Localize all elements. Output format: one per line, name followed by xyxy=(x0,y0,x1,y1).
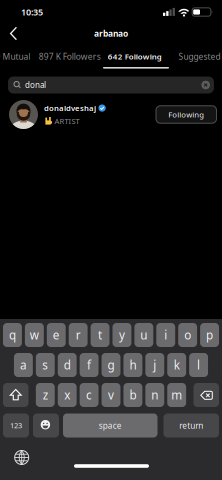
button[interactable]: Back xyxy=(1,22,23,45)
staticText: 897 K Followers xyxy=(39,51,101,62)
staticText: n xyxy=(151,387,158,403)
button[interactable]: x xyxy=(58,383,77,407)
button[interactable]: y xyxy=(112,323,131,347)
button[interactable]: n xyxy=(145,383,164,407)
staticText: a xyxy=(20,357,27,373)
staticText: e xyxy=(53,327,60,343)
button[interactable]: s xyxy=(36,353,55,377)
button[interactable]: m xyxy=(167,383,186,407)
staticText: k xyxy=(174,357,180,373)
staticText: donaldveshaj xyxy=(44,103,96,113)
button[interactable]: q xyxy=(3,323,22,347)
staticText: v xyxy=(108,387,114,403)
staticText: o xyxy=(184,327,191,343)
staticText: 10:35 xyxy=(21,6,43,18)
button[interactable]: 123 xyxy=(3,413,29,437)
staticText: h xyxy=(129,357,136,373)
button[interactable]: d xyxy=(58,353,77,377)
button[interactable]: Following xyxy=(156,106,216,123)
button[interactable]: w xyxy=(25,323,44,347)
button[interactable]: p xyxy=(200,323,219,347)
staticText: u xyxy=(140,327,147,343)
staticText: c xyxy=(86,387,92,403)
button[interactable]: o xyxy=(178,323,197,347)
button[interactable]: Shift xyxy=(3,383,28,407)
button[interactable]: return xyxy=(163,413,219,437)
button[interactable]: k xyxy=(167,353,186,377)
button[interactable]: Delete xyxy=(193,383,219,407)
staticText: return xyxy=(179,420,203,431)
button[interactable]: Search xyxy=(8,76,214,93)
staticText: z xyxy=(43,387,48,403)
staticText: Following xyxy=(168,109,204,120)
button[interactable]: z xyxy=(36,383,55,407)
staticText: p xyxy=(206,327,213,343)
button[interactable]: Suggested xyxy=(178,51,220,62)
staticText: b xyxy=(129,387,136,403)
staticText: l xyxy=(197,357,200,373)
button[interactable]: Clear search xyxy=(201,81,210,89)
button[interactable]: f xyxy=(80,353,98,377)
staticText: d xyxy=(64,357,71,373)
button[interactable]: b xyxy=(123,383,142,407)
button[interactable]: g xyxy=(101,353,120,377)
staticText: Suggested xyxy=(178,51,220,62)
staticText: s xyxy=(42,357,48,373)
staticText: t xyxy=(98,327,102,343)
button[interactable]: space xyxy=(63,413,157,437)
button[interactable]: Next keyboard xyxy=(13,449,30,466)
button[interactable]: a xyxy=(14,353,33,377)
staticText: j xyxy=(153,357,156,373)
button[interactable]: e xyxy=(47,323,66,347)
staticText: r xyxy=(76,327,81,343)
button[interactable]: j xyxy=(145,353,164,377)
button[interactable]: t xyxy=(91,323,109,347)
staticText: x xyxy=(64,387,70,403)
staticText: space xyxy=(99,420,122,431)
button[interactable]: 642 Following xyxy=(108,51,162,62)
staticText: f xyxy=(87,357,91,373)
button[interactable]: c xyxy=(80,383,98,407)
button[interactable]: 10 Mutual xyxy=(0,51,30,62)
button[interactable]: l xyxy=(189,353,208,377)
staticText: 10 Mutual xyxy=(0,51,30,62)
button[interactable]: donaldveshaj xyxy=(0,100,222,129)
staticText: i xyxy=(164,327,167,343)
staticText: 123 xyxy=(10,420,22,431)
staticText: arbanao xyxy=(94,28,128,39)
staticText: q xyxy=(9,327,16,343)
button[interactable]: 897 K Followers xyxy=(39,51,101,62)
staticText: m xyxy=(171,387,182,403)
button[interactable]: r xyxy=(69,323,88,347)
button[interactable]: u xyxy=(134,323,153,347)
button[interactable]: v xyxy=(101,383,120,407)
staticText: ARTIST xyxy=(54,116,79,126)
staticText: donal xyxy=(25,80,46,90)
button[interactable]: i xyxy=(156,323,175,347)
staticText: y xyxy=(119,327,125,343)
staticText: 642 Following xyxy=(108,51,162,62)
button[interactable]: h xyxy=(123,353,142,377)
button[interactable]: Emoji xyxy=(33,413,59,437)
staticText: g xyxy=(107,357,114,373)
staticText: w xyxy=(30,327,39,343)
